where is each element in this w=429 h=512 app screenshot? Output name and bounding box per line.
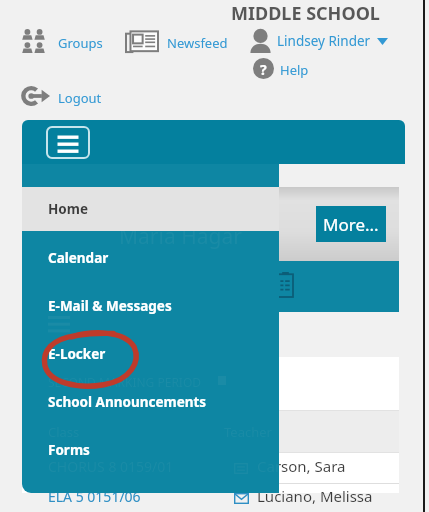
button[interactable]: Lindsey Rinder: [249, 27, 396, 54]
staticText: Teacher: [224, 423, 272, 441]
staticText: Class: [48, 423, 80, 441]
button[interactable]: Home: [22, 187, 279, 231]
staticText: SECOND MARKING PERIOD: [50, 378, 216, 396]
staticText: Forms: [48, 441, 90, 459]
button[interactable]: Open navigation menu: [46, 126, 90, 159]
button[interactable]: E-Locker: [22, 330, 279, 378]
staticText: Carson, Sara: [257, 456, 346, 476]
staticText: Groups: [58, 34, 103, 52]
staticText: School Announcements: [48, 393, 207, 411]
staticText: Help: [280, 61, 309, 79]
staticText: Maria Hagar: [119, 222, 242, 251]
staticText: Luciano, Melissa: [257, 486, 373, 506]
button[interactable]: Logout: [22, 85, 105, 108]
button[interactable]: E-Mail & Messages: [22, 282, 279, 330]
staticText: Lindsey Rinder: [277, 32, 371, 50]
staticText: CHORUS 8 0159/01: [48, 457, 174, 476]
staticText: Maria Hagar: [119, 222, 242, 251]
staticText: Home: [48, 200, 88, 218]
staticText: ?: [260, 60, 267, 79]
staticText: Carson: [257, 456, 279, 476]
button[interactable]: Calendar: [22, 234, 279, 282]
staticText: ELA 5 0151/06: [48, 487, 141, 506]
staticText: More...: [323, 213, 379, 236]
staticText: SECOND MARKING PERIOD: [48, 374, 202, 390]
staticText: MIDDLE SCHOOL: [231, 1, 380, 26]
staticText: Class: [48, 423, 80, 441]
button[interactable]: Forms: [22, 426, 279, 474]
button[interactable]: Groups: [22, 29, 103, 54]
button[interactable]: ?: [253, 58, 311, 79]
button[interactable]: School Announcements: [22, 378, 279, 426]
staticText: CHORUS 8 0159/01: [48, 457, 174, 476]
button[interactable]: Newsfeed: [126, 29, 231, 54]
staticText: E-Locker: [48, 345, 106, 363]
staticText: Teacher: [224, 423, 272, 441]
button[interactable]: More...: [316, 206, 386, 242]
staticText: E-Mail & Messages: [48, 297, 172, 315]
staticText: Newsfeed: [167, 34, 228, 52]
staticText: Calendar: [48, 249, 109, 267]
staticText: Logout: [58, 89, 102, 107]
